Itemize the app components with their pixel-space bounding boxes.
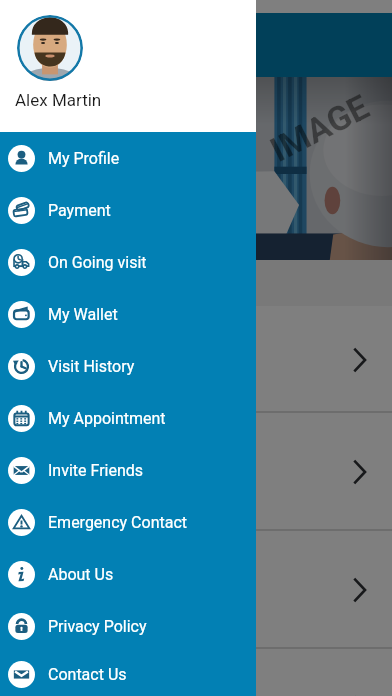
button[interactable]: My Wallet	[0, 288, 256, 340]
button[interactable]: My Profile	[0, 132, 256, 184]
staticText: Contact Us	[48, 665, 127, 684]
staticText: Emergency Contact	[48, 513, 188, 532]
staticText: On Going visit	[48, 253, 147, 272]
button[interactable]: Privacy Policy	[0, 600, 256, 652]
staticText: Visit History	[48, 357, 135, 376]
staticText: Payment	[48, 201, 111, 220]
staticText: About Us	[48, 565, 114, 584]
staticText: My Wallet	[48, 305, 118, 324]
button[interactable]: My Appointment	[0, 392, 256, 444]
button[interactable]	[0, 306, 392, 413]
staticText: Alex Martin	[15, 90, 102, 110]
button[interactable]: About Us	[0, 548, 256, 600]
button[interactable]	[0, 531, 392, 649]
button[interactable]: Emergency Contact	[0, 496, 256, 548]
button[interactable]: Contact Us	[0, 652, 256, 696]
staticText: My Profile	[48, 149, 120, 168]
button[interactable]: Invite Friends	[0, 444, 256, 496]
staticText: Privacy Policy	[48, 617, 147, 636]
staticText: Invite Friends	[48, 461, 144, 480]
button[interactable]: On Going visit	[0, 236, 256, 288]
button[interactable]: Payment	[0, 184, 256, 236]
button[interactable]	[0, 649, 392, 696]
button[interactable]: Visit History	[0, 340, 256, 392]
staticText: My Appointment	[48, 409, 166, 428]
button[interactable]	[0, 413, 392, 531]
